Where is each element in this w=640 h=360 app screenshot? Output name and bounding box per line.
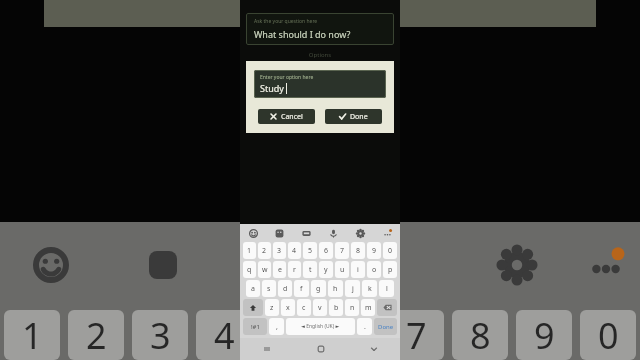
button[interactable]: d — [278, 280, 292, 297]
button[interactable]: Cancel — [258, 109, 315, 124]
button[interactable]: 4 — [288, 242, 301, 259]
staticText: r — [293, 265, 296, 275]
button[interactable]: Back — [347, 338, 400, 360]
staticText: o — [372, 265, 377, 275]
staticText: q — [247, 265, 252, 275]
button[interactable]: j — [345, 280, 360, 297]
button[interactable]: Shift — [243, 299, 263, 316]
staticText: Done — [378, 323, 394, 331]
staticText: g — [316, 284, 321, 294]
button[interactable]: t — [303, 261, 317, 278]
button[interactable]: Enter your option here — [254, 70, 386, 98]
staticText: b — [334, 303, 339, 313]
button[interactable]: Clipboard — [299, 226, 313, 240]
button[interactable]: e — [273, 261, 286, 278]
staticText: 2 — [262, 246, 267, 256]
staticText: e — [278, 265, 282, 275]
button[interactable]: c — [297, 299, 311, 316]
button[interactable]: , — [269, 318, 284, 335]
staticText: y — [324, 265, 328, 275]
staticText: Study — [260, 82, 284, 94]
button[interactable]: b — [329, 299, 343, 316]
staticText: Cancel — [281, 112, 303, 122]
staticText: Enter your option here — [260, 74, 314, 81]
staticText: Done — [350, 112, 368, 122]
button[interactable]: Backspace — [377, 299, 397, 316]
staticText: 8 — [470, 311, 491, 360]
button[interactable]: . — [357, 318, 372, 335]
button[interactable]: Recents — [240, 338, 294, 360]
staticText: Options — [240, 51, 400, 59]
staticText: . — [364, 322, 366, 332]
button[interactable]: 8 — [351, 242, 365, 259]
staticText: 6 — [324, 246, 329, 256]
button[interactable]: 2 — [258, 242, 271, 259]
button[interactable]: Done — [325, 109, 382, 124]
staticText: 7 — [340, 246, 345, 256]
staticText: 3 — [277, 246, 282, 256]
button[interactable]: 3 — [273, 242, 286, 259]
button[interactable]: 6 — [319, 242, 333, 259]
staticText: s — [267, 284, 271, 294]
staticText: f — [300, 284, 303, 294]
staticText: 1 — [247, 246, 252, 256]
button[interactable]: g — [311, 280, 326, 297]
staticText: Ask the your question here — [254, 18, 318, 25]
button[interactable]: y — [319, 261, 333, 278]
button[interactable]: Ask the your question here — [246, 13, 394, 45]
staticText: 8 — [356, 246, 361, 256]
staticText: v — [318, 303, 322, 313]
staticText: k — [368, 284, 372, 294]
button[interactable]: Done — [374, 318, 397, 335]
button[interactable]: m — [361, 299, 375, 316]
button[interactable]: ◄ English (UK) ► — [286, 318, 355, 335]
button[interactable]: More options — [380, 226, 394, 240]
button[interactable]: s — [262, 280, 276, 297]
button[interactable]: 9 — [367, 242, 381, 259]
button[interactable]: Voice input — [326, 226, 340, 240]
button[interactable]: !#1 — [243, 318, 267, 335]
button[interactable]: l — [379, 280, 394, 297]
button[interactable]: p — [383, 261, 397, 278]
staticText: n — [350, 303, 355, 313]
staticText: z — [270, 303, 274, 313]
button[interactable]: 0 — [383, 242, 397, 259]
button[interactable]: Home — [294, 338, 347, 360]
button[interactable]: 7 — [335, 242, 349, 259]
button[interactable]: v — [313, 299, 327, 316]
button[interactable]: x — [281, 299, 295, 316]
button[interactable]: r — [288, 261, 301, 278]
staticText: 0 — [388, 246, 393, 256]
button[interactable]: 5 — [303, 242, 317, 259]
button[interactable]: f — [294, 280, 309, 297]
staticText: 5 — [308, 246, 313, 256]
button[interactable]: Emoji — [246, 226, 260, 240]
staticText: 4 — [292, 246, 297, 256]
staticText: u — [340, 265, 345, 275]
button[interactable]: u — [335, 261, 349, 278]
button[interactable]: o — [367, 261, 381, 278]
staticText: l — [386, 284, 388, 294]
button[interactable]: k — [362, 280, 377, 297]
staticText: h — [333, 284, 338, 294]
staticText: m — [365, 303, 372, 313]
button[interactable]: a — [246, 280, 260, 297]
staticText: ◄ English (UK) ► — [301, 323, 340, 330]
staticText: 3 — [150, 311, 171, 360]
staticText: x — [286, 303, 290, 313]
staticText: j — [352, 284, 354, 294]
button[interactable]: q — [243, 261, 256, 278]
button[interactable]: w — [258, 261, 271, 278]
button[interactable]: Settings — [353, 226, 367, 240]
staticText: 7 — [406, 311, 427, 360]
button[interactable]: Stickers — [272, 226, 286, 240]
staticText: 9 — [372, 246, 377, 256]
button[interactable]: h — [328, 280, 343, 297]
staticText: !#1 — [251, 323, 260, 331]
staticText: i — [357, 265, 359, 275]
button[interactable]: n — [345, 299, 359, 316]
button[interactable]: i — [351, 261, 365, 278]
button[interactable]: z — [265, 299, 279, 316]
button[interactable]: 1 — [243, 242, 256, 259]
staticText: p — [388, 265, 393, 275]
